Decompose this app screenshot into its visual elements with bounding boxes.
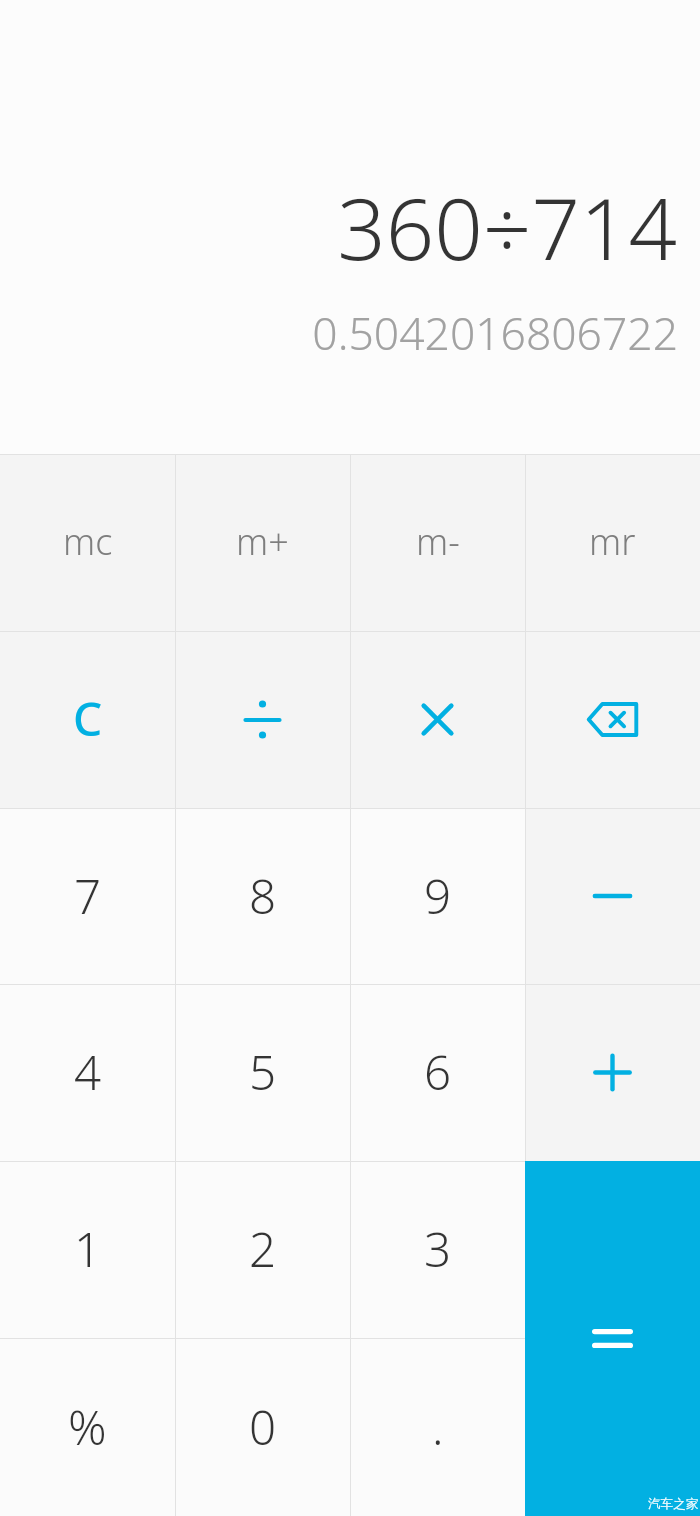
button[interactable]: m+ [175, 454, 350, 631]
staticText: . [432, 1394, 444, 1459]
staticText: 360÷714 [0, 169, 677, 269]
button[interactable]: Backspace [525, 631, 700, 808]
button[interactable]: 1 [0, 1161, 175, 1338]
staticText: 0.5042016806722 [0, 303, 678, 363]
button[interactable]: 3 [350, 1161, 525, 1338]
button[interactable]: Divide [175, 631, 350, 808]
staticText: mr [589, 517, 636, 566]
staticText: m- [416, 517, 460, 566]
staticText: 9 [424, 863, 452, 928]
button[interactable]: Multiply [350, 631, 525, 808]
button[interactable]: 4 [0, 984, 175, 1161]
button[interactable]: 8 [175, 808, 350, 984]
staticText: 5 [249, 1039, 277, 1104]
staticText: 6 [424, 1039, 452, 1104]
staticText: m+ [236, 517, 289, 566]
staticText: 3 [424, 1216, 452, 1281]
button[interactable]: 0 [175, 1338, 350, 1516]
button[interactable]: m- [350, 454, 525, 631]
button[interactable]: 6 [350, 984, 525, 1161]
staticText: C [73, 687, 103, 750]
staticText: 7 [74, 863, 102, 928]
button[interactable]: mr [525, 454, 700, 631]
staticText: 8 [249, 863, 277, 928]
button[interactable]: 9 [350, 808, 525, 984]
button[interactable]: . [350, 1338, 525, 1516]
staticText: 2 [249, 1216, 277, 1281]
staticText: 汽车之家 [648, 1496, 699, 1512]
button[interactable]: % [0, 1338, 175, 1516]
button[interactable]: 7 [0, 808, 175, 984]
staticText: % [68, 1394, 107, 1459]
button[interactable]: mc [0, 454, 175, 631]
button[interactable]: 2 [175, 1161, 350, 1338]
staticText: 0 [249, 1394, 277, 1459]
staticText: 4 [74, 1039, 102, 1104]
staticText: mc [63, 517, 113, 566]
staticText: 1 [74, 1216, 102, 1281]
button[interactable]: Plus [525, 984, 700, 1161]
button[interactable]: Equals [525, 1161, 700, 1516]
button[interactable]: C [0, 631, 175, 808]
button[interactable]: 5 [175, 984, 350, 1161]
button[interactable]: Minus [525, 808, 700, 984]
